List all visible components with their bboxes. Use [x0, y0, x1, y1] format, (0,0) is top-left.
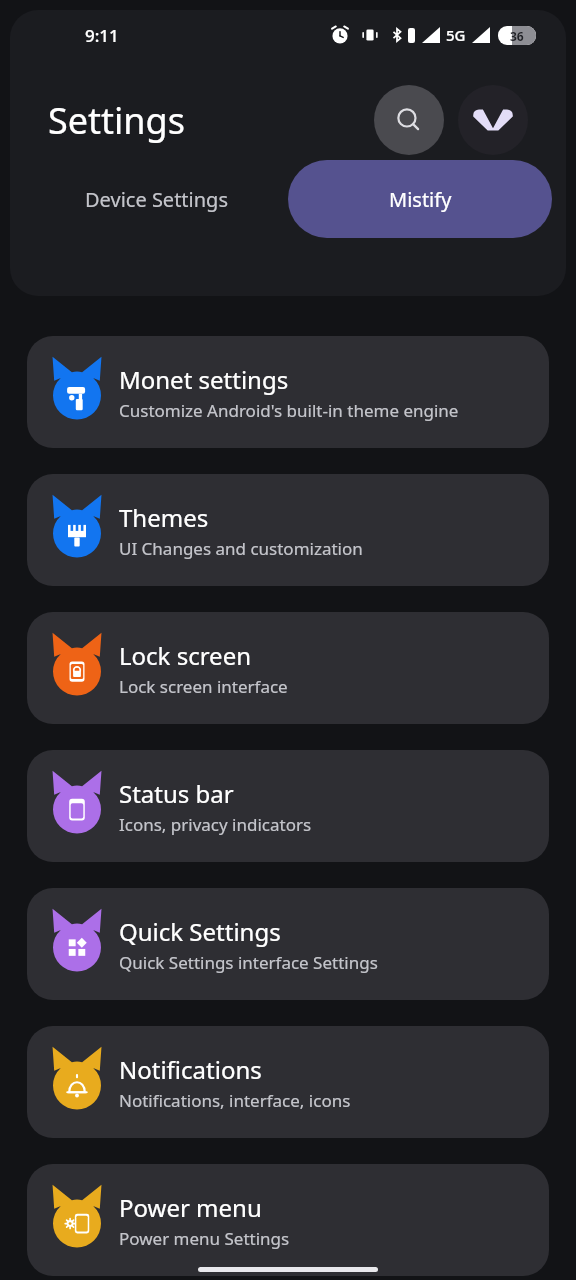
button[interactable]: Lock screen	[27, 612, 549, 724]
staticText: Notifications, interface, icons	[119, 1089, 351, 1112]
staticText: Power menu	[119, 1191, 262, 1224]
staticText: Themes	[119, 501, 209, 534]
button[interactable]: Device Settings	[24, 160, 288, 238]
staticText: 9:11	[85, 24, 119, 47]
staticText: Customize Android's built-in theme engin…	[119, 399, 459, 422]
button[interactable]: Status bar	[27, 750, 549, 862]
staticText: Notifications	[119, 1053, 262, 1086]
button[interactable]: Mistify	[288, 160, 552, 238]
staticText: 5G	[446, 25, 466, 45]
staticText: Settings	[48, 96, 185, 145]
staticText: Monet settings	[119, 363, 289, 396]
staticText: Quick Settings interface Settings	[119, 951, 378, 974]
staticText: Quick Settings	[119, 915, 281, 948]
button[interactable]: Notifications	[27, 1026, 549, 1138]
button[interactable]: Quick Settings	[27, 888, 549, 1000]
staticText: Device Settings	[85, 186, 228, 213]
staticText: UI Changes and customization	[119, 537, 363, 560]
button[interactable]: Monet settings	[27, 336, 549, 448]
staticText: Lock screen	[119, 639, 252, 672]
staticText: Power menu Settings	[119, 1227, 290, 1250]
staticText: Status bar	[119, 777, 234, 810]
staticText: Icons, privacy indicators	[119, 813, 312, 836]
button[interactable]: Mistify app	[458, 85, 528, 155]
staticText: 36	[510, 28, 524, 44]
staticText: Mistify	[389, 186, 452, 213]
button[interactable]: Power menu	[27, 1164, 549, 1276]
button[interactable]: Search	[374, 85, 444, 155]
staticText: Lock screen interface	[119, 675, 288, 698]
button[interactable]: Themes	[27, 474, 549, 586]
